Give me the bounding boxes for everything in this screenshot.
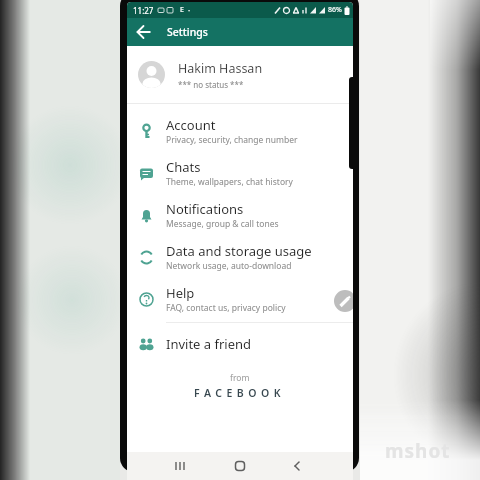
button[interactable] [228,454,252,478]
button[interactable]: Help [127,278,353,320]
staticText: E [180,5,184,15]
staticText: Notifications [166,200,244,218]
button[interactable] [334,290,353,312]
staticText: Network usage, auto-download [166,260,292,272]
button[interactable]: Data and storage usage [127,236,353,278]
staticText: FACEBOOK [194,386,286,400]
button[interactable] [168,454,192,478]
button[interactable]: Notifications [127,194,353,236]
button[interactable]: Invite a friend [127,323,353,364]
staticText: Message, group & call tones [166,218,279,230]
staticText: Privacy, security, change number [166,134,298,146]
staticText: Chats [166,158,201,176]
staticText: Settings [167,25,208,39]
staticText: · [188,5,191,16]
button[interactable] [136,24,152,40]
staticText: 86% [328,5,342,15]
staticText: *** no status *** [178,79,244,90]
staticText: Hakim Hassan [178,60,263,77]
button[interactable] [285,454,309,478]
staticText: Invite a friend [166,335,252,353]
button[interactable]: Hakim Hassan [127,46,353,103]
staticText: Account [166,116,216,134]
staticText: Help [166,284,195,302]
staticText: 11:27 [133,5,154,16]
staticText: FAQ, contact us, privacy policy [166,302,286,314]
button[interactable]: Chats [127,152,353,194]
button[interactable]: Account [127,110,353,152]
staticText: mshot [385,438,451,464]
staticText: Theme, wallpapers, chat history [166,176,293,188]
staticText: from [230,372,250,384]
staticText: Data and storage usage [166,242,312,260]
